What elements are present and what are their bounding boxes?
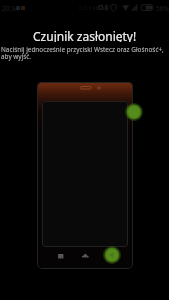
staticText: Czujnik zasłonięty! [33, 28, 137, 42]
button[interactable]: Recent apps [56, 252, 65, 261]
button[interactable]: Home [80, 252, 90, 259]
staticText: 0,01 kB/s [79, 4, 105, 12]
button[interactable]: Back [103, 246, 121, 264]
staticText: Naciśnij jednocześnie przyciski Wstecz o… [1, 45, 164, 61]
staticText: 20:34 [2, 4, 19, 13]
staticText: 56% [156, 4, 169, 13]
button[interactable]: Back [125, 103, 143, 121]
